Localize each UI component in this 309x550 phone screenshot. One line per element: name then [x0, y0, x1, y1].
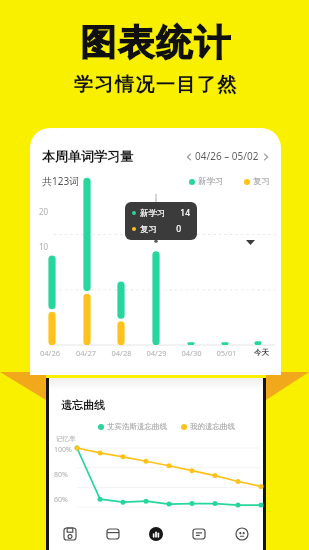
- staticText: 14: [177, 207, 190, 219]
- button[interactable]: Previous week: [182, 150, 195, 163]
- staticText: 本周单词学习量: [42, 148, 133, 164]
- staticText: 04/29: [139, 348, 174, 358]
- button[interactable]: Plan: [49, 518, 91, 550]
- staticText: 遗忘曲线: [61, 398, 105, 412]
- staticText: 80%: [54, 470, 68, 480]
- staticText: 新学习: [198, 176, 224, 187]
- staticText: 记忆率: [56, 435, 76, 443]
- staticText: 艾宾浩斯遗忘曲线: [107, 422, 167, 431]
- staticText: 04/26 – 05/02: [195, 149, 259, 163]
- staticText: 复习: [253, 176, 270, 187]
- staticText: 10: [39, 241, 49, 252]
- staticText: 我的遗忘曲线: [190, 422, 235, 431]
- button[interactable]: Profile: [220, 518, 263, 550]
- staticText: 新学习: [140, 208, 166, 219]
- staticText: 0: [168, 223, 181, 235]
- button[interactable]: Statistics: [134, 518, 177, 550]
- staticText: 04/30: [174, 348, 209, 358]
- button[interactable]: Notes: [177, 518, 220, 550]
- staticText: 04/26: [32, 348, 68, 358]
- staticText: 学习情况一目了然: [73, 73, 237, 97]
- staticText: 今天: [244, 348, 279, 357]
- button[interactable]: Next week: [259, 150, 272, 163]
- staticText: 60%: [54, 495, 68, 505]
- staticText: 图表统计: [79, 20, 231, 65]
- staticText: 复习: [140, 224, 157, 235]
- button[interactable]: Word cards: [91, 518, 134, 550]
- staticText: 05/01: [209, 348, 244, 358]
- staticText: 04/28: [104, 348, 139, 358]
- staticText: 100%: [54, 445, 72, 455]
- staticText: 04/27: [68, 348, 104, 358]
- staticText: 共123词: [42, 174, 80, 188]
- staticText: 40%: [54, 520, 68, 530]
- staticText: 20: [39, 206, 49, 217]
